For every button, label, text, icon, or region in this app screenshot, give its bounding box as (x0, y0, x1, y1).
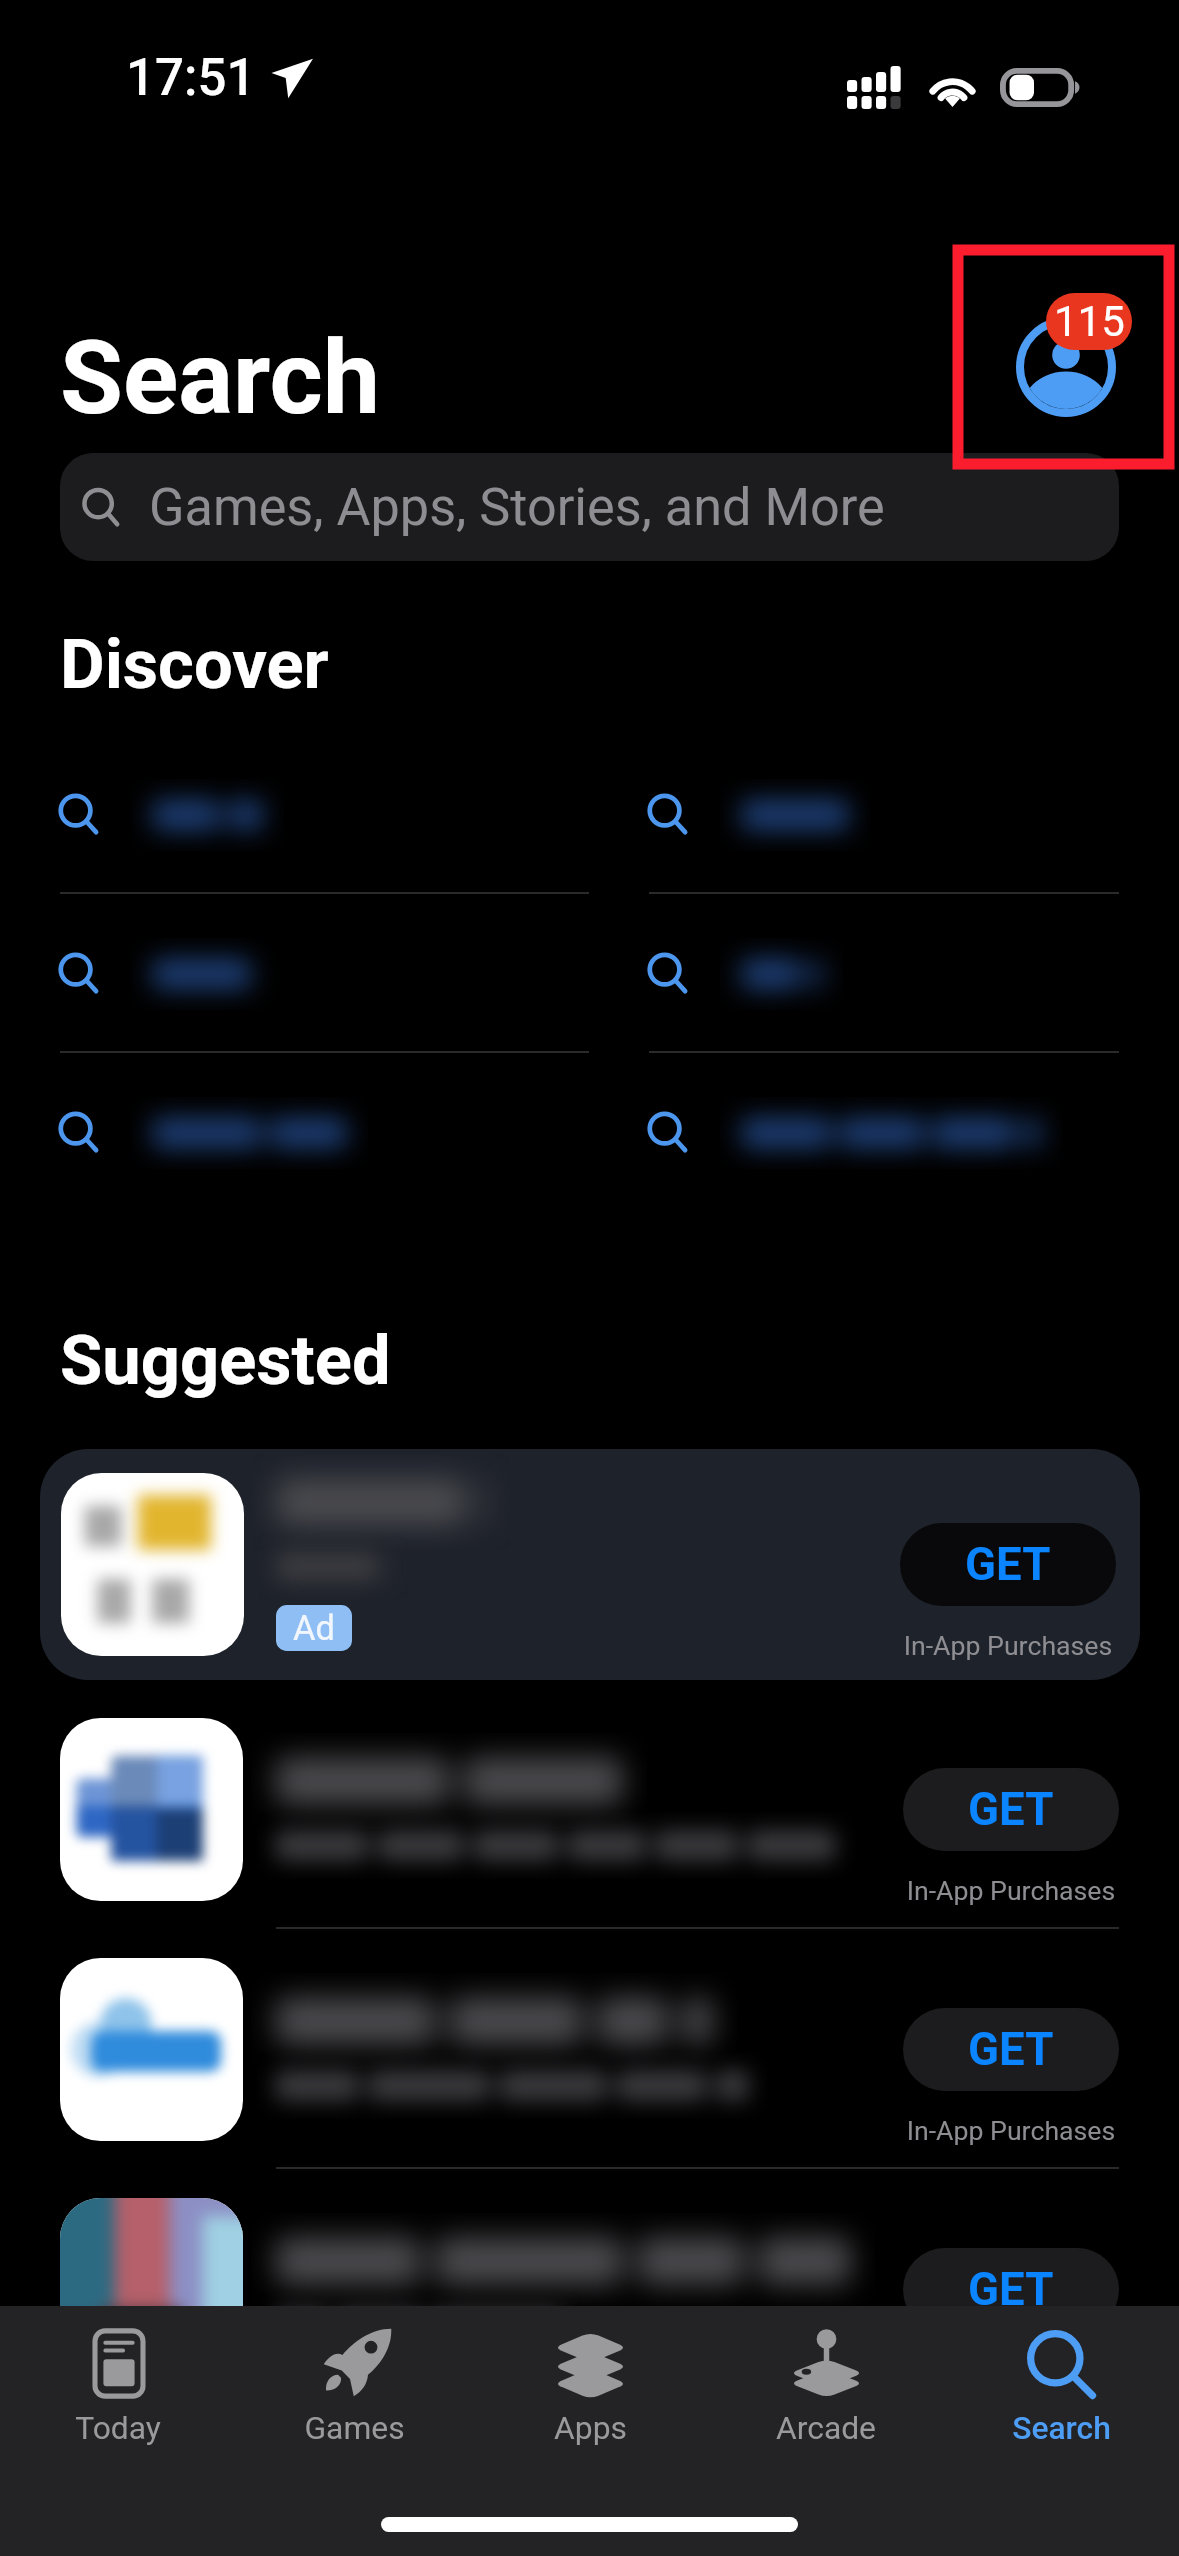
staticText: 17:51 (126, 48, 256, 108)
button[interactable]: Apps (472, 2306, 708, 2480)
staticText: Games (304, 2409, 405, 2446)
staticText: Discover (60, 624, 329, 705)
button[interactable]: GET (903, 2248, 1119, 2331)
staticText: In-App Purchases (903, 2115, 1119, 2146)
staticText: Ad (293, 1608, 335, 1648)
button[interactable] (0, 1053, 589, 1212)
staticText: Search (60, 318, 381, 438)
button[interactable]: Games, Apps, Stories, and More (60, 453, 1119, 561)
button[interactable]: GET (0, 1689, 1179, 1929)
staticText: Today (75, 2409, 161, 2446)
staticText: Games, Apps, Stories, and More (149, 477, 885, 538)
button[interactable]: GET (903, 2008, 1119, 2091)
button[interactable]: GET (900, 1523, 1116, 1606)
staticText: Arcade (776, 2409, 876, 2446)
button[interactable] (589, 1053, 1179, 1212)
button[interactable]: GET (0, 1929, 1179, 2169)
button[interactable]: Games (236, 2306, 472, 2480)
staticText: In-App Purchases (903, 2355, 1119, 2386)
button[interactable]: GET (903, 1768, 1119, 1851)
staticText: In-App Purchases (903, 1875, 1119, 1906)
staticText: GET (965, 1538, 1051, 1591)
staticText: GET (968, 2263, 1054, 2316)
staticText: GET (968, 1783, 1054, 1836)
button[interactable] (0, 735, 589, 894)
button[interactable]: Search (944, 2306, 1179, 2480)
button[interactable]: GET (0, 2169, 1179, 2409)
button[interactable]: Arcade (708, 2306, 944, 2480)
button[interactable] (589, 735, 1179, 894)
staticText: GET (968, 2023, 1054, 2076)
staticText: Search (1012, 2409, 1111, 2446)
staticText: Apps (554, 2409, 627, 2446)
button[interactable]: Today (0, 2306, 236, 2480)
button[interactable] (589, 894, 1179, 1053)
button[interactable]: Account (984, 267, 1149, 417)
staticText: Suggested (60, 1320, 391, 1401)
button[interactable]: Ad (40, 1449, 1140, 1680)
staticText: 115 (1054, 297, 1125, 346)
staticText: In-App Purchases (900, 1630, 1116, 1661)
button[interactable] (0, 894, 589, 1053)
